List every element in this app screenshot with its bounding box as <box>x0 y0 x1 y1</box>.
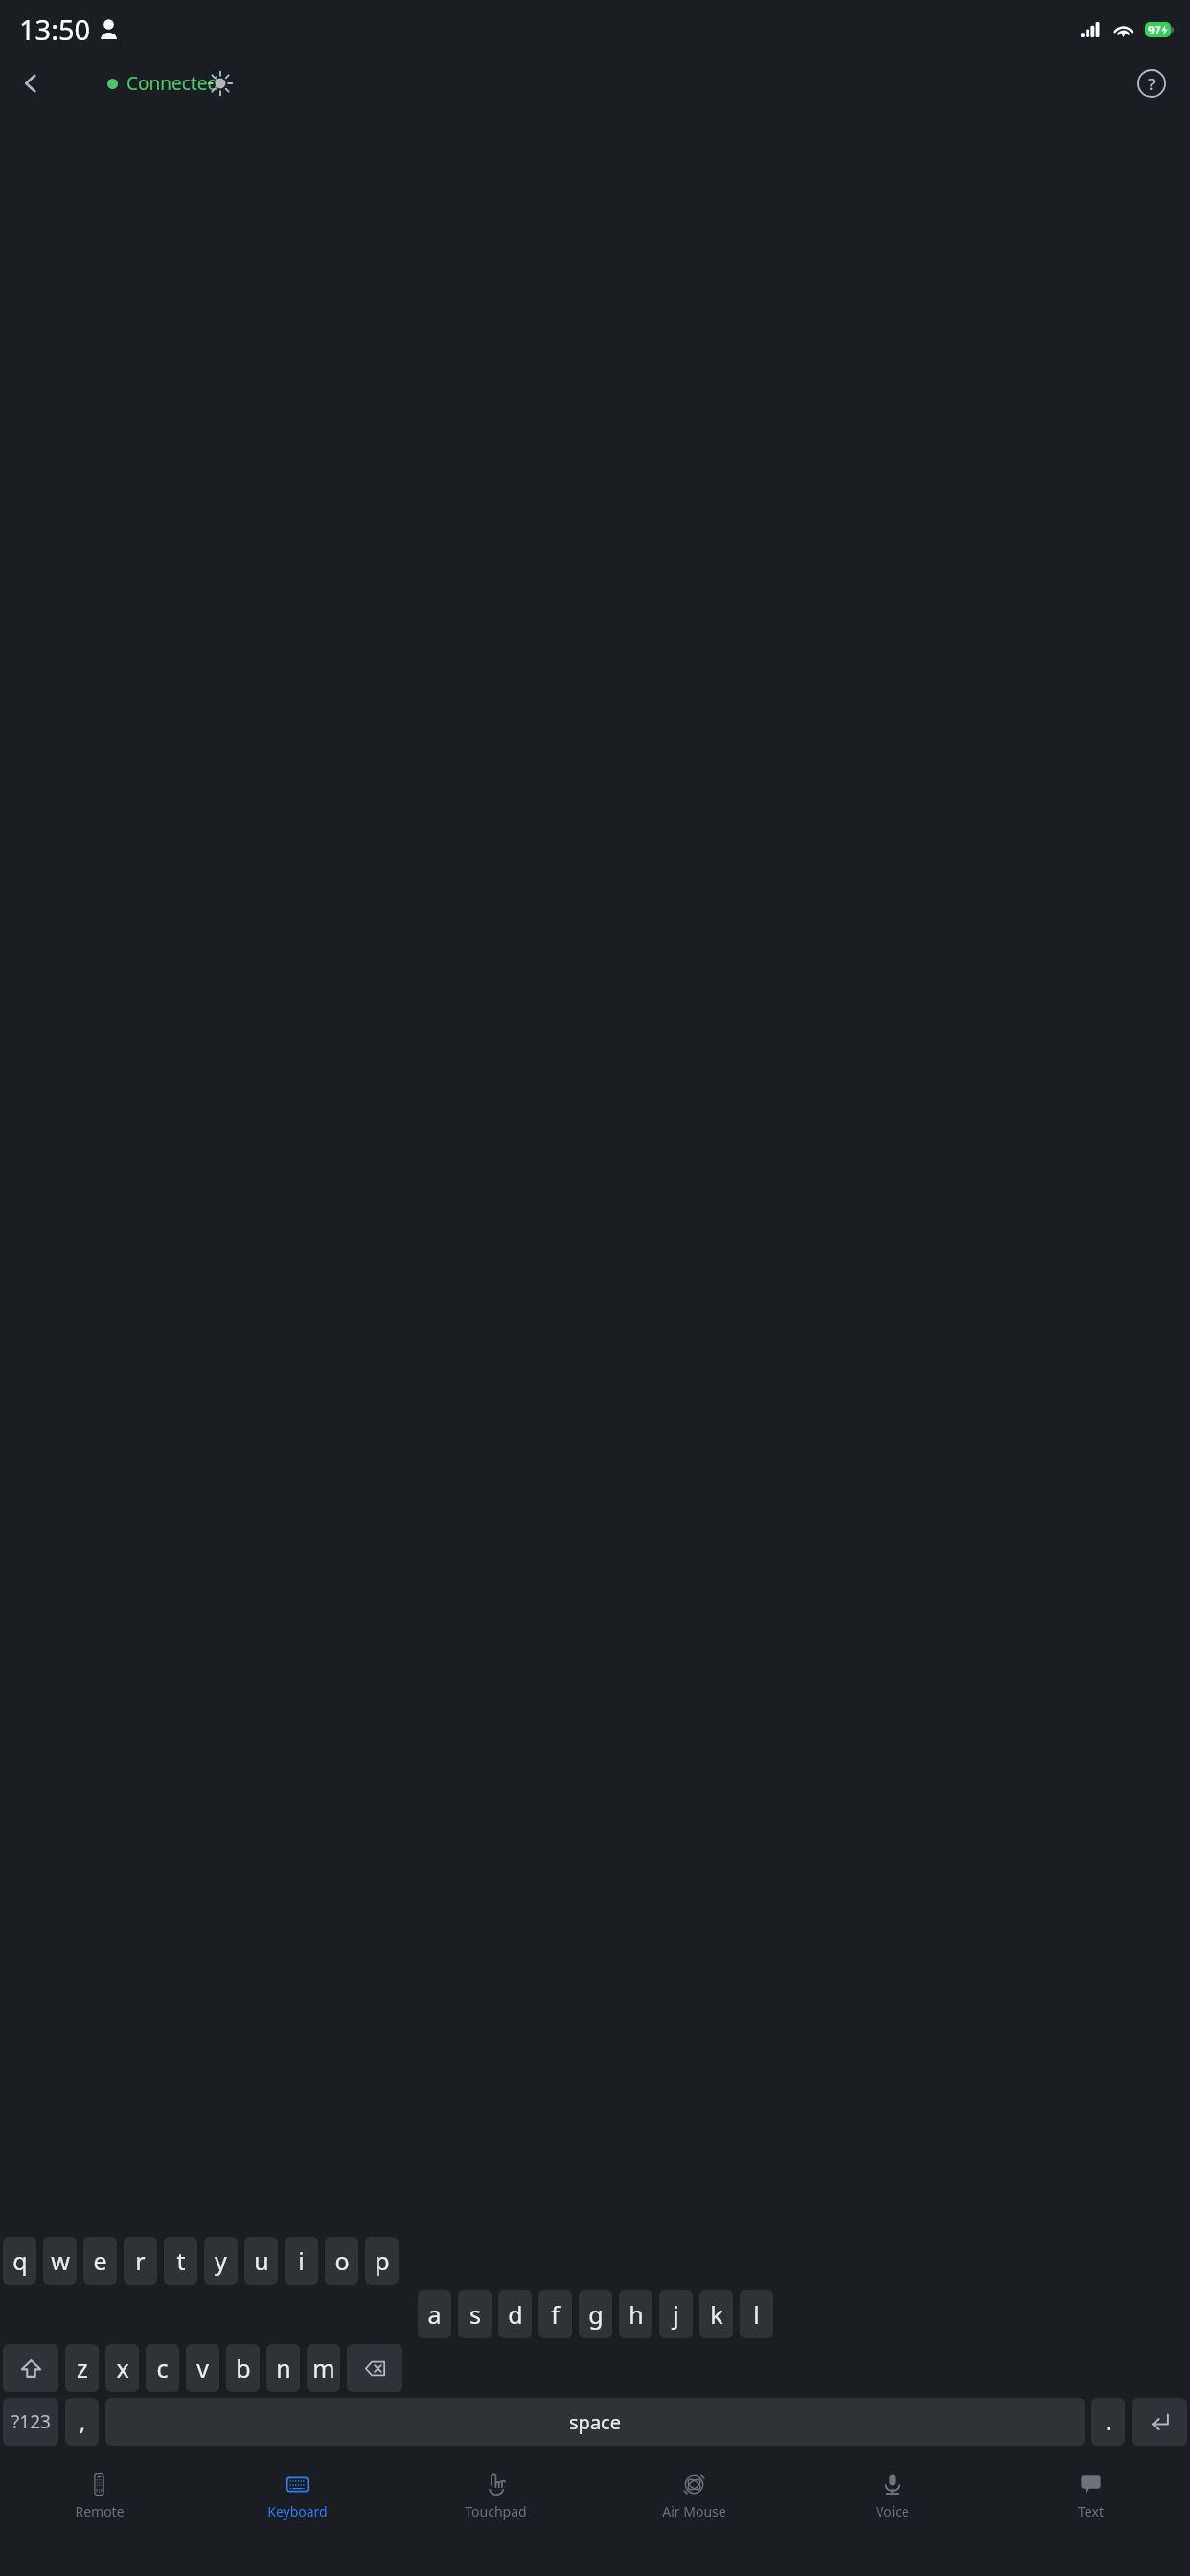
staticText: d <box>508 2298 523 2331</box>
button[interactable]: i <box>285 2237 318 2285</box>
staticText: j <box>673 2298 679 2331</box>
button[interactable]: x <box>105 2344 139 2392</box>
staticText: i <box>298 2244 305 2277</box>
button[interactable]: Text <box>992 2463 1190 2530</box>
staticText: c <box>156 2352 169 2384</box>
staticText: f <box>551 2298 560 2331</box>
staticText: Connected <box>126 71 219 96</box>
button[interactable]: o <box>325 2237 358 2285</box>
staticText: u <box>254 2244 269 2277</box>
button[interactable]: t <box>164 2237 197 2285</box>
button[interactable]: h <box>619 2290 652 2338</box>
button[interactable]: l <box>740 2290 773 2338</box>
button[interactable]: a <box>418 2290 451 2338</box>
staticText: space <box>569 2409 621 2435</box>
button[interactable]: Remote <box>0 2463 198 2530</box>
button[interactable]: c <box>146 2344 179 2392</box>
button[interactable]: . <box>1091 2398 1125 2446</box>
staticText: n <box>276 2352 291 2384</box>
staticText: e <box>93 2244 107 2277</box>
staticText: r <box>135 2244 146 2277</box>
button[interactable]: m <box>307 2344 340 2392</box>
button[interactable]: d <box>498 2290 532 2338</box>
button[interactable]: Back <box>6 58 56 108</box>
button[interactable]: Air Mouse <box>595 2463 793 2530</box>
staticText: l <box>753 2298 760 2331</box>
button[interactable]: u <box>244 2237 278 2285</box>
button[interactable]: ?123 <box>3 2398 58 2446</box>
staticText: ?123 <box>11 2409 51 2434</box>
staticText: o <box>334 2244 350 2277</box>
button[interactable]: w <box>43 2237 77 2285</box>
staticText: 97 <box>1148 22 1161 37</box>
button[interactable]: r <box>124 2237 157 2285</box>
button[interactable]: Enter <box>1132 2398 1187 2446</box>
button[interactable]: y <box>204 2237 238 2285</box>
button[interactable]: k <box>699 2290 733 2338</box>
button[interactable]: space <box>105 2398 1085 2446</box>
staticText: x <box>116 2352 129 2384</box>
button[interactable]: , <box>65 2398 99 2446</box>
button[interactable]: j <box>659 2290 693 2338</box>
button[interactable]: f <box>538 2290 572 2338</box>
button[interactable]: z <box>65 2344 99 2392</box>
button[interactable]: Keyboard <box>198 2463 397 2530</box>
button[interactable]: Connected <box>107 71 219 96</box>
button[interactable]: b <box>226 2344 260 2392</box>
button[interactable]: Shift <box>3 2344 58 2392</box>
staticText: 13:50 <box>19 11 91 48</box>
staticText: . <box>1106 2407 1111 2436</box>
staticText: a <box>427 2298 442 2331</box>
staticText: q <box>12 2244 28 2277</box>
staticText: Touchpad <box>465 2502 527 2520</box>
staticText: k <box>710 2298 723 2331</box>
button[interactable]: p <box>365 2237 399 2285</box>
staticText: , <box>80 2407 85 2436</box>
staticText: h <box>629 2298 644 2331</box>
staticText: Remote <box>75 2502 125 2520</box>
button[interactable]: Backspace <box>347 2344 402 2392</box>
staticText: m <box>312 2352 335 2384</box>
staticText: Air Mouse <box>662 2502 726 2520</box>
button[interactable]: n <box>266 2344 300 2392</box>
staticText: s <box>469 2298 481 2331</box>
staticText: t <box>176 2244 186 2277</box>
staticText: v <box>196 2352 209 2384</box>
staticText: Keyboard <box>267 2502 328 2520</box>
staticText: Voice <box>876 2502 909 2520</box>
button[interactable]: Help <box>1127 58 1177 108</box>
button[interactable]: e <box>83 2237 117 2285</box>
staticText: p <box>375 2244 390 2277</box>
staticText: Text <box>1078 2502 1104 2520</box>
button[interactable]: s <box>458 2290 492 2338</box>
staticText: ? <box>1148 73 1156 95</box>
staticText: b <box>236 2352 251 2384</box>
staticText: g <box>588 2298 604 2331</box>
button[interactable]: Brightness <box>195 58 245 108</box>
button[interactable]: g <box>579 2290 612 2338</box>
staticText: y <box>215 2244 227 2277</box>
staticText: z <box>77 2352 88 2384</box>
button[interactable]: Voice <box>793 2463 992 2530</box>
button[interactable]: v <box>186 2344 219 2392</box>
button[interactable]: q <box>3 2237 36 2285</box>
staticText: w <box>51 2244 70 2277</box>
button[interactable]: Touchpad <box>397 2463 595 2530</box>
